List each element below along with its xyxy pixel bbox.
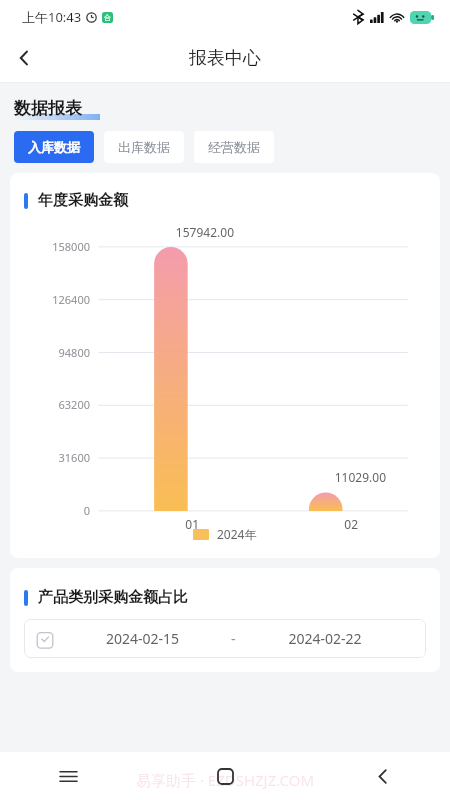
staticText: 126400: [10, 292, 90, 307]
button[interactable]: Back: [0, 34, 48, 82]
staticText: 158000: [10, 239, 90, 254]
staticText: 易享助手 · EZDSHZJZ.COM: [136, 770, 315, 790]
button[interactable]: 经营数据: [194, 131, 274, 163]
button[interactable]: Recent apps: [46, 754, 90, 798]
staticText: 报表中心: [189, 47, 261, 70]
staticText: 63200: [10, 397, 90, 412]
staticText: 数据报表: [14, 98, 82, 119]
staticText: 合: [104, 13, 111, 22]
staticText: 0: [10, 503, 90, 518]
button[interactable]: 2024-02-15: [24, 619, 426, 658]
staticText: 经营数据: [208, 139, 260, 155]
button[interactable]: 出库数据: [104, 131, 184, 163]
button[interactable]: Home: [203, 754, 247, 798]
staticText: 出库数据: [118, 139, 170, 155]
staticText: 入库数据: [28, 139, 80, 155]
staticText: 157942.00: [10, 224, 234, 240]
staticText: 产品类别采购金额占比: [38, 588, 188, 607]
staticText: 2024-02-22: [236, 629, 414, 648]
staticText: 02: [10, 516, 358, 532]
staticText: 2024年: [217, 526, 257, 542]
button[interactable]: Back: [360, 754, 404, 798]
staticText: 31600: [10, 450, 90, 465]
staticText: 上午10:43: [22, 8, 82, 26]
button[interactable]: 入库数据: [14, 131, 94, 163]
staticText: 2024-02-15: [54, 629, 231, 648]
staticText: 01: [10, 516, 199, 532]
staticText: 年度采购金额: [38, 191, 128, 210]
staticText: 94800: [10, 345, 90, 360]
staticText: 11029.00: [10, 469, 386, 485]
staticText: -: [231, 629, 236, 648]
